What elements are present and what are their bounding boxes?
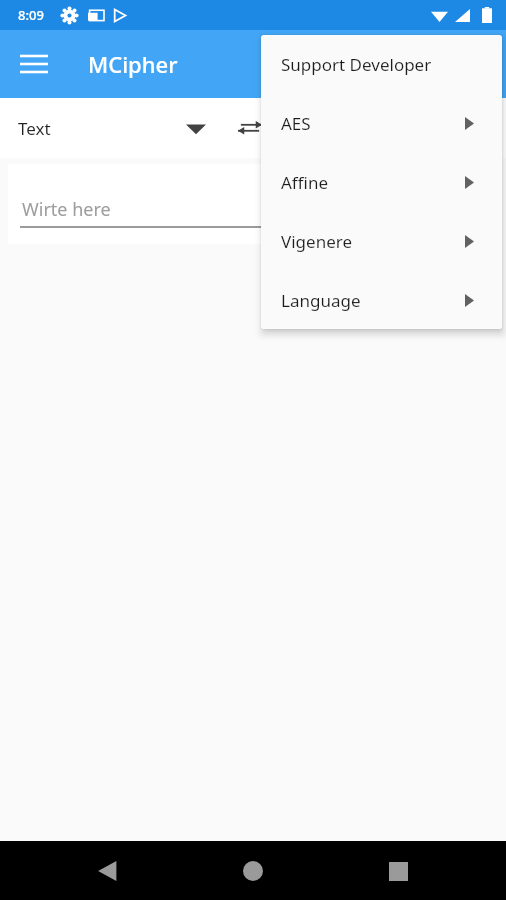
button[interactable]: Wirte here bbox=[22, 197, 111, 222]
button[interactable]: Support Developer bbox=[261, 35, 502, 94]
button[interactable]: Back bbox=[84, 847, 132, 895]
staticText: MCipher bbox=[88, 49, 178, 79]
staticText: Support Developer bbox=[281, 53, 432, 76]
staticText: Affine bbox=[281, 171, 329, 194]
staticText: Language bbox=[281, 289, 361, 312]
button[interactable]: Text bbox=[0, 98, 506, 158]
button[interactable]: AES bbox=[261, 94, 502, 153]
button[interactable]: Vigenere bbox=[261, 212, 502, 271]
staticText: Vigenere bbox=[281, 230, 352, 253]
button[interactable]: Affine bbox=[261, 153, 502, 212]
staticText: 8:09 bbox=[18, 6, 44, 24]
button[interactable]: Open navigation drawer bbox=[10, 40, 58, 88]
button[interactable]: Recent apps bbox=[374, 847, 422, 895]
button[interactable]: Home bbox=[229, 847, 277, 895]
staticText: AES bbox=[281, 112, 311, 135]
button[interactable]: Language bbox=[261, 271, 502, 329]
staticText: Text bbox=[18, 117, 51, 140]
